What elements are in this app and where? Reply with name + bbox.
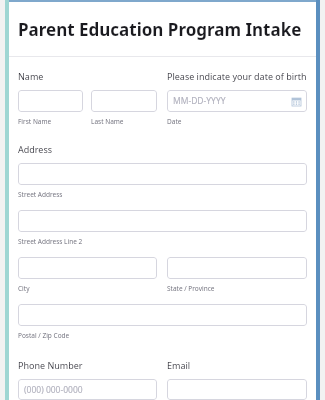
staticText: Street Address Line 2 <box>18 237 83 246</box>
staticText: Postal / Zip Code <box>18 331 70 340</box>
staticText: (000) 000-0000 <box>24 384 151 396</box>
other: Open calendar picker <box>292 97 301 106</box>
staticText: Parent Education Program Intake Form <box>18 18 307 41</box>
staticText: State / Province <box>167 284 215 293</box>
staticText: Name <box>18 70 44 82</box>
staticText: Street Address <box>18 190 63 199</box>
staticText: MM-DD-YYYY <box>173 95 292 107</box>
staticText: Address <box>18 143 53 155</box>
staticText: Email <box>167 359 191 371</box>
staticText: City <box>18 284 30 293</box>
button[interactable] <box>18 163 307 185</box>
staticText: Date <box>167 117 182 126</box>
button[interactable] <box>167 379 307 400</box>
staticText: Last Name <box>91 117 124 126</box>
button[interactable]: MM-DD-YYYY <box>167 90 307 112</box>
button[interactable] <box>18 257 157 279</box>
button[interactable] <box>91 90 157 112</box>
staticText: Phone Number <box>18 359 83 371</box>
button[interactable] <box>18 90 83 112</box>
button[interactable] <box>18 304 307 326</box>
staticText: First Name <box>18 117 52 126</box>
button[interactable]: (000) 000-0000 <box>18 379 157 400</box>
button[interactable] <box>167 257 307 279</box>
staticText: Please indicate your date of birth <box>167 70 307 82</box>
button[interactable] <box>18 210 307 232</box>
